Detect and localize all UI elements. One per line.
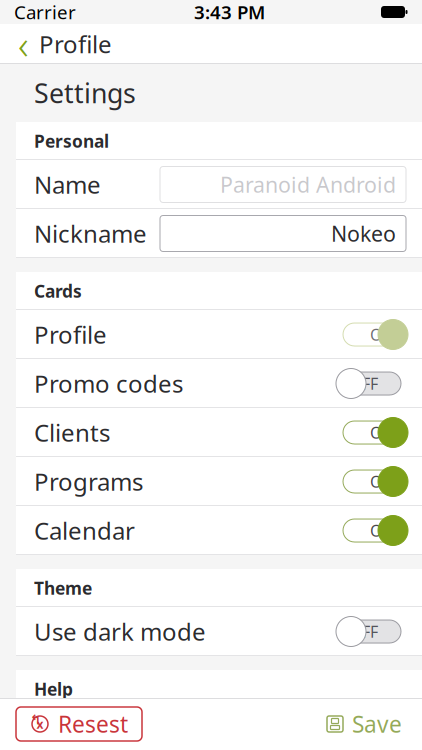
staticText: ↰	[30, 712, 41, 727]
button[interactable]: Programs	[16, 457, 422, 506]
staticText: Profile	[34, 319, 107, 350]
staticText: Nickname	[34, 218, 147, 249]
staticText: ON	[370, 520, 394, 541]
button[interactable]: Promo codes	[16, 359, 422, 408]
button[interactable]: Nokeo	[160, 215, 406, 251]
staticText: Resest	[58, 709, 128, 739]
staticText: ON	[370, 324, 394, 345]
button[interactable]: Clients	[16, 408, 422, 457]
staticText: 3:43 PM	[194, 0, 265, 24]
staticText: Profile	[39, 28, 112, 60]
staticText: Calendar	[34, 515, 135, 546]
staticText: ON	[370, 422, 394, 443]
staticText: ON	[370, 471, 394, 492]
staticText: Nokeo	[331, 219, 396, 248]
staticText: OFF	[350, 621, 378, 642]
staticText: Use dark mode	[34, 616, 206, 647]
staticText: Show tips	[34, 717, 142, 748]
button[interactable]: Calendar	[16, 506, 422, 555]
button[interactable]: Back to Profile	[0, 24, 120, 64]
staticText: Settings	[34, 75, 136, 111]
staticText: Programs	[34, 466, 143, 497]
staticText: Personal	[34, 129, 109, 152]
staticText: Carrier	[14, 0, 76, 24]
staticText: Cards	[34, 279, 82, 302]
button[interactable]: Use dark mode	[16, 607, 422, 656]
staticText: ‹	[18, 17, 29, 70]
staticText: x	[36, 716, 43, 732]
staticText: Paranoid Android	[220, 170, 396, 199]
button[interactable]: Paranoid Android	[160, 166, 406, 202]
staticText: Name	[34, 169, 101, 200]
staticText: Theme	[34, 576, 92, 599]
button[interactable]: Show tips	[16, 708, 422, 750]
button[interactable]: x	[16, 707, 142, 741]
staticText: Clients	[34, 417, 110, 448]
staticText: ON	[370, 722, 394, 743]
staticText: OFF	[350, 373, 378, 394]
button[interactable]: Save	[322, 707, 406, 741]
staticText: Promo codes	[34, 368, 183, 399]
staticText: Help	[34, 677, 73, 700]
staticText: Save	[352, 709, 402, 739]
button[interactable]: Profile	[16, 310, 422, 359]
